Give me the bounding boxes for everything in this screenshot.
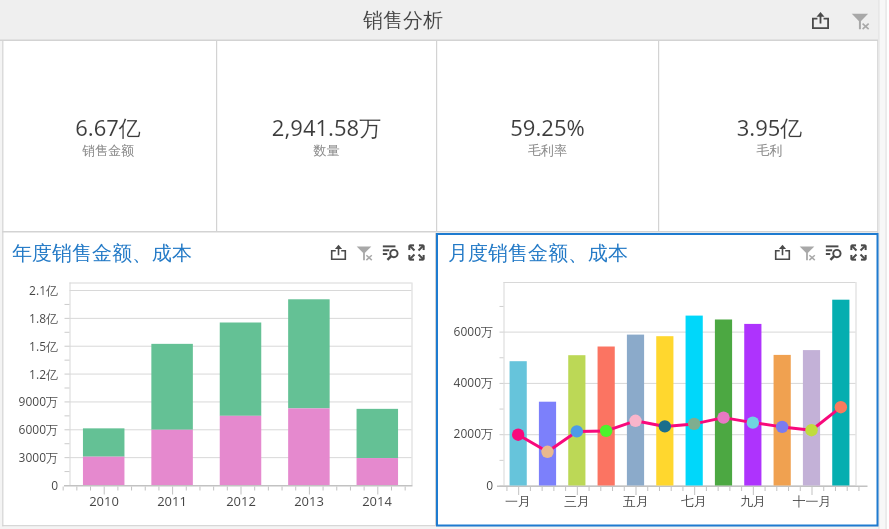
button[interactable]: 导出 xyxy=(806,6,834,34)
staticText: 2.1亿 xyxy=(0,282,58,298)
button[interactable]: 查询明细 xyxy=(376,238,404,266)
button[interactable]: 清除筛选 xyxy=(793,238,821,266)
staticText: 三月 xyxy=(547,493,607,509)
staticText: 数量 xyxy=(217,142,436,332)
staticText: 4000万 xyxy=(441,374,493,390)
staticText: 6000万 xyxy=(0,421,58,437)
button[interactable]: 59.25% xyxy=(437,41,658,231)
staticText: 2013 xyxy=(279,492,339,510)
staticText: 2014 xyxy=(347,492,407,510)
staticText: 2000万 xyxy=(441,425,493,441)
button[interactable]: 2,941.58万 xyxy=(217,41,436,231)
staticText: 销售分析 xyxy=(303,8,503,33)
button[interactable]: 6.67亿 xyxy=(0,41,216,231)
staticText: 毛利 xyxy=(659,142,880,332)
staticText: 销售金额 xyxy=(0,142,216,332)
staticText: 一月 xyxy=(488,493,548,509)
staticText: 0 xyxy=(441,477,493,493)
staticText: 0 xyxy=(0,477,58,493)
staticText: 毛利率 xyxy=(437,142,658,332)
button[interactable]: 清除筛选 xyxy=(350,238,378,266)
button[interactable]: 导出 xyxy=(768,238,796,266)
button[interactable]: 3.95亿 xyxy=(659,41,880,231)
button[interactable]: 全屏 xyxy=(402,238,430,266)
staticText: 6.67亿 xyxy=(0,112,216,302)
button[interactable]: 导出 xyxy=(324,238,352,266)
staticText: 七月 xyxy=(664,493,724,509)
staticText: 59.25% xyxy=(437,112,658,302)
staticText: 3000万 xyxy=(0,449,58,465)
staticText: 3.95亿 xyxy=(659,112,880,302)
staticText: 五月 xyxy=(606,493,666,509)
button[interactable]: 查询明细 xyxy=(819,238,847,266)
staticText: 1.5亿 xyxy=(0,338,58,354)
staticText: 6000万 xyxy=(441,323,493,339)
staticText: 年度销售金额、成本 xyxy=(12,241,192,266)
staticText: 2,941.58万 xyxy=(217,112,436,302)
staticText: 十一月 xyxy=(782,493,842,509)
button[interactable]: 清除筛选 xyxy=(846,6,874,34)
staticText: 2011 xyxy=(142,492,202,510)
staticText: 1.8亿 xyxy=(0,310,58,326)
staticText: 九月 xyxy=(723,493,783,509)
staticText: 2010 xyxy=(74,492,134,510)
button[interactable]: 全屏 xyxy=(844,238,872,266)
staticText: 2012 xyxy=(211,492,271,510)
staticText: 9000万 xyxy=(0,393,58,409)
staticText: 月度销售金额、成本 xyxy=(448,241,628,266)
staticText: 1.2亿 xyxy=(0,366,58,382)
